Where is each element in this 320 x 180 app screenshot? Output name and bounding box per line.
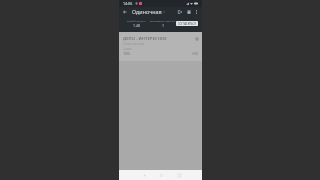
button[interactable]: Back xyxy=(121,8,128,15)
button[interactable]: СОГЛАСИТЬСЯ xyxy=(176,21,198,26)
staticText: ДЕЛО - ИНТЕРЕСНОЕ xyxy=(123,35,167,41)
staticText: 1 xyxy=(162,23,165,28)
staticText: 1.48 xyxy=(133,23,140,28)
button[interactable]: Remove selection xyxy=(194,36,199,41)
staticText: ВОЗМОЖНЫЙ ВЫИГР. xyxy=(150,19,176,22)
staticText: 100 xyxy=(123,51,130,56)
staticText: Тотал больше xyxy=(123,42,145,46)
staticText: КОЭФФИЦИЕНТ xyxy=(127,19,146,22)
staticText: Сумма xyxy=(123,47,132,51)
button[interactable]: Back xyxy=(139,170,149,180)
staticText: СОГЛАСИТЬСЯ xyxy=(178,22,196,25)
button[interactable]: Home xyxy=(156,170,166,180)
staticText: 14:06 xyxy=(123,1,133,6)
button[interactable]: Recent apps xyxy=(174,170,184,180)
button[interactable]: Delete xyxy=(184,7,193,16)
button[interactable]: Одиночная xyxy=(132,8,165,15)
staticText: 0/40 xyxy=(192,52,199,56)
button[interactable]: Share bet xyxy=(175,7,184,16)
staticText: Одиночная xyxy=(132,8,162,15)
button[interactable]: More options xyxy=(193,7,200,16)
